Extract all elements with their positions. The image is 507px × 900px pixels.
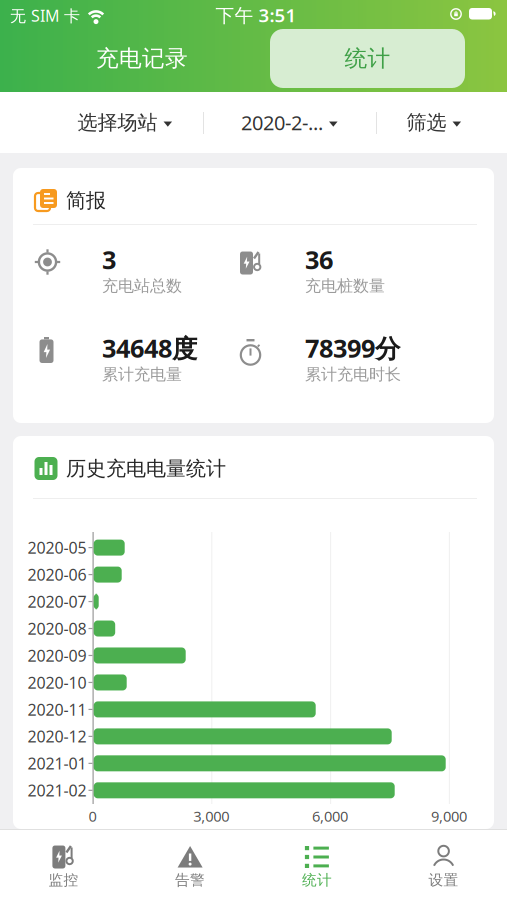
button[interactable]: 告警: [127, 829, 253, 900]
staticText: 2020-2-...: [241, 109, 323, 136]
button[interactable]: 充电记录: [44, 29, 239, 88]
staticText: 9,000: [431, 806, 467, 826]
staticText: 2021-01: [27, 753, 86, 774]
staticText: 36: [305, 243, 333, 276]
staticText: 筛选: [406, 110, 446, 135]
staticText: 2021-02: [27, 780, 86, 801]
staticText: 34648度: [102, 331, 197, 365]
staticText: 3: [102, 243, 116, 276]
staticText: 2020-11: [27, 699, 86, 720]
staticText: 统计: [302, 871, 332, 889]
staticText: 充电站总数: [102, 276, 182, 296]
button[interactable]: 2020-2-...: [203, 92, 376, 153]
staticText: 累计充电时长: [305, 365, 401, 384]
staticText: 无 SIM 卡: [10, 5, 80, 26]
button[interactable]: 筛选: [376, 92, 506, 153]
staticText: 告警: [175, 871, 205, 889]
staticText: 78399分: [305, 331, 400, 365]
staticText: 监控: [48, 871, 78, 889]
staticText: 统计: [344, 45, 390, 72]
button[interactable]: 统计: [254, 829, 380, 900]
staticText: 2020-12: [27, 726, 86, 747]
button[interactable]: 监控: [0, 829, 126, 900]
button[interactable]: 统计: [270, 29, 465, 88]
staticText: 2020-10: [27, 672, 86, 693]
staticText: 历史充电电量统计: [66, 456, 226, 481]
staticText: 2020-05: [27, 537, 86, 558]
staticText: 充电桩数量: [305, 276, 385, 296]
staticText: 2020-09: [27, 645, 86, 666]
staticText: 简报: [66, 188, 106, 213]
staticText: 6,000: [312, 806, 348, 826]
staticText: 选择场站: [77, 110, 157, 135]
staticText: 3,000: [193, 806, 229, 826]
staticText: 设置: [429, 871, 459, 889]
button[interactable]: 选择场站: [0, 92, 203, 153]
staticText: 2020-08: [27, 618, 86, 639]
staticText: 累计充电量: [102, 365, 182, 384]
staticText: 充电记录: [96, 45, 188, 72]
staticText: 下午 3:51: [215, 3, 296, 27]
button[interactable]: 设置: [381, 829, 507, 900]
staticText: 2020-06: [27, 564, 86, 585]
staticText: 0: [88, 806, 96, 826]
staticText: 2020-07: [27, 591, 86, 612]
